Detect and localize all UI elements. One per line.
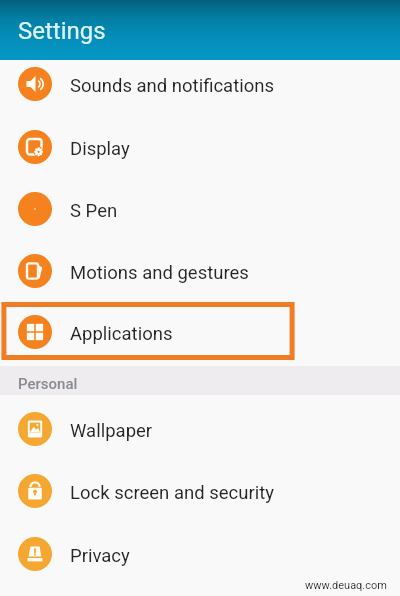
button[interactable]: Motions and gestures xyxy=(0,240,400,302)
other: Motions and gestures xyxy=(18,254,52,288)
other: Privacy xyxy=(18,537,52,571)
button[interactable]: Display xyxy=(0,116,400,178)
staticText: Privacy xyxy=(70,545,130,567)
button[interactable]: Wallpaper xyxy=(0,398,400,460)
staticText: Motions and gestures xyxy=(70,262,249,284)
button[interactable]: Lock screen and security xyxy=(0,460,400,522)
staticText: Sounds and notifications xyxy=(70,75,275,97)
staticText: www.deuaq.com xyxy=(305,579,387,592)
staticText: Display xyxy=(70,138,130,160)
staticText: Applications xyxy=(70,323,173,345)
other: Applications xyxy=(18,315,52,349)
staticText: S Pen xyxy=(70,200,118,222)
staticText: Settings xyxy=(18,17,106,45)
other: Sounds and notifications xyxy=(18,67,52,101)
button[interactable]: Applications xyxy=(0,301,400,363)
other: Display xyxy=(18,130,52,164)
button[interactable]: S Pen xyxy=(0,178,400,240)
staticText: Wallpaper xyxy=(70,420,153,442)
staticText: Personal xyxy=(18,375,78,393)
staticText: Lock screen and security xyxy=(70,482,275,504)
button[interactable]: Privacy xyxy=(0,523,400,585)
other: Wallpaper xyxy=(18,412,52,446)
other: S Pen xyxy=(18,192,52,226)
other: Lock screen and security xyxy=(18,474,52,508)
button[interactable]: Sounds and notifications xyxy=(0,60,400,115)
